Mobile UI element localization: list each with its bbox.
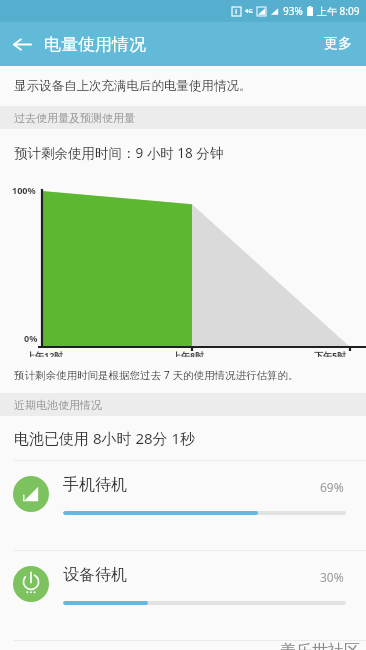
staticText: 设备待机 bbox=[63, 565, 127, 585]
staticText: 电池已使用 8小时 28分 1秒 bbox=[14, 428, 196, 448]
staticText: 69% bbox=[320, 479, 344, 495]
staticText: 100% bbox=[12, 184, 36, 196]
staticText: 30% bbox=[320, 569, 344, 585]
staticText: 电量使用情况 bbox=[44, 34, 146, 55]
staticText: 上午 8:09 bbox=[317, 4, 360, 18]
staticText: 近期电池使用情况 bbox=[14, 398, 102, 412]
button[interactable]: Back bbox=[0, 22, 44, 66]
staticText: 上午8时 bbox=[172, 349, 205, 357]
button[interactable]: 手机待机 bbox=[0, 461, 366, 550]
staticText: 下午5时 bbox=[314, 349, 347, 357]
staticText: 0% bbox=[24, 332, 38, 344]
staticText: 预计剩余使用时间是根据您过去 7 天的使用情况进行估算的。 bbox=[14, 368, 299, 382]
staticText: 显示设备自上次充满电后的电量使用情况。 bbox=[14, 78, 252, 94]
staticText: 更多 bbox=[324, 35, 352, 53]
staticText: 上午12时 bbox=[26, 349, 64, 357]
button[interactable]: 设备待机 bbox=[0, 551, 366, 640]
staticText: 手机待机 bbox=[63, 475, 127, 495]
staticText: 预计剩余使用时间：9 小时 18 分钟 bbox=[14, 144, 224, 162]
staticText: 过去使用量及预测使用量 bbox=[14, 111, 135, 125]
button[interactable]: 更多 bbox=[310, 22, 366, 66]
staticText: 93% bbox=[283, 4, 303, 18]
staticText: 4G bbox=[245, 7, 253, 15]
staticText: 盖乐世社区 bbox=[280, 641, 360, 650]
